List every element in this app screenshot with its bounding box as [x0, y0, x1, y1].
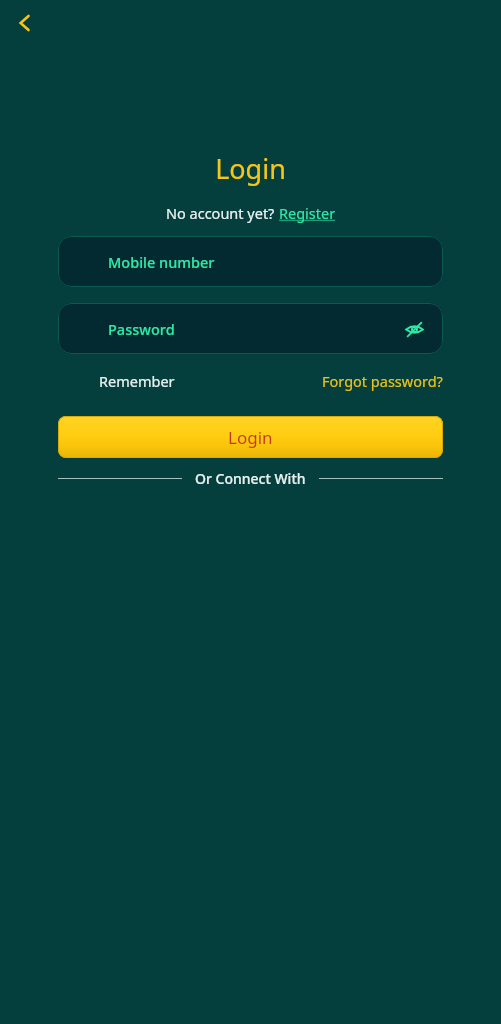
staticText: Or Connect With	[195, 469, 306, 488]
staticText: Password	[108, 319, 175, 339]
button[interactable]: Register	[279, 203, 336, 223]
staticText: Forgot password?	[322, 371, 443, 391]
button[interactable]: Show password	[398, 313, 430, 345]
button[interactable]: Back	[8, 6, 42, 40]
staticText: No account yet?	[166, 203, 279, 223]
staticText: Remember	[99, 371, 175, 391]
button[interactable]: Password	[58, 303, 443, 354]
button[interactable]: Forgot password?	[322, 371, 443, 391]
staticText: Login	[215, 150, 286, 187]
button[interactable]: Login	[58, 416, 443, 458]
staticText: Mobile number	[108, 252, 215, 272]
button[interactable]: Mobile number	[58, 236, 443, 287]
button[interactable]: Remember	[99, 371, 175, 391]
staticText: Register	[279, 203, 336, 223]
staticText: Login	[228, 426, 273, 449]
